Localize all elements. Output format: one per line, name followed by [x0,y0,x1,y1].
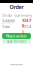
staticText: Save for later [7,40,26,43]
staticText: Subtotal [2,17,15,23]
staticText: Order [9,3,23,11]
staticText: Total [2,24,10,29]
staticText: Order summary [2,12,32,18]
button[interactable]: Place order [2,33,31,39]
staticText: $31.40 [22,24,31,34]
button[interactable]: Save for later [2,39,31,44]
staticText: Place order [6,33,27,39]
staticText: $24.90 [22,17,31,28]
staticText: Delivery [2,21,13,24]
